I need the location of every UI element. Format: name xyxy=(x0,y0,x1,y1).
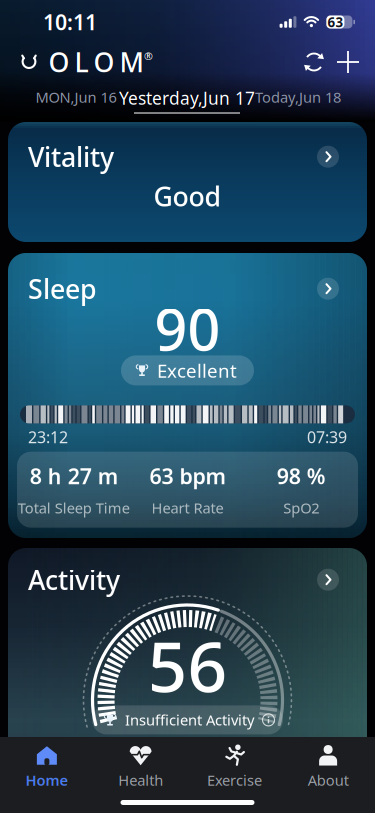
staticText: MON,Jun 16 xyxy=(35,87,116,107)
button[interactable]: Activity details xyxy=(317,569,339,591)
staticText: 56 xyxy=(147,619,227,711)
button[interactable]: Home xyxy=(0,744,94,790)
staticText: Total Sleep Time xyxy=(18,498,130,518)
staticText: SpO2 xyxy=(283,498,319,518)
staticText: Good xyxy=(153,178,221,214)
staticText: Yesterday,Jun 17 xyxy=(119,86,255,109)
staticText: 8 h 27 m xyxy=(30,462,118,490)
button[interactable]: Health xyxy=(94,744,188,790)
button[interactable]: Add device xyxy=(331,45,365,79)
staticText: 10:11 xyxy=(43,8,97,36)
staticText: Today,Jun 18 xyxy=(255,87,341,107)
staticText: 98 % xyxy=(277,462,326,490)
staticText: 63 xyxy=(327,13,343,31)
staticText: Home xyxy=(25,770,68,790)
staticText: ® xyxy=(144,49,153,63)
staticText: OLOM xyxy=(48,44,143,80)
staticText: 63 bpm xyxy=(149,462,225,490)
staticText: Activity xyxy=(28,562,120,597)
button[interactable]: Yesterday,Jun 17 xyxy=(113,88,261,112)
staticText: Vitality xyxy=(28,139,114,174)
button[interactable]: About xyxy=(281,744,375,790)
staticText: Heart Rate xyxy=(151,498,223,518)
staticText: Exercise xyxy=(207,770,262,790)
button[interactable]: Exercise xyxy=(187,744,281,790)
staticText: Excellent xyxy=(157,358,237,383)
button[interactable]: Sync xyxy=(297,45,331,79)
button[interactable]: Sleep details xyxy=(317,278,339,300)
button[interactable]: Today,Jun 18 xyxy=(244,87,352,107)
button[interactable]: Vitality xyxy=(8,122,367,242)
staticText: 90 xyxy=(154,290,220,366)
staticText: About xyxy=(308,770,349,790)
button[interactable]: MON,Jun 16 xyxy=(22,87,130,107)
staticText: 07:39 xyxy=(307,426,347,448)
staticText: Insufficient Activity xyxy=(125,710,254,730)
staticText: Health xyxy=(118,770,163,790)
staticText: Sleep xyxy=(28,271,97,306)
staticText: 23:12 xyxy=(28,426,68,448)
